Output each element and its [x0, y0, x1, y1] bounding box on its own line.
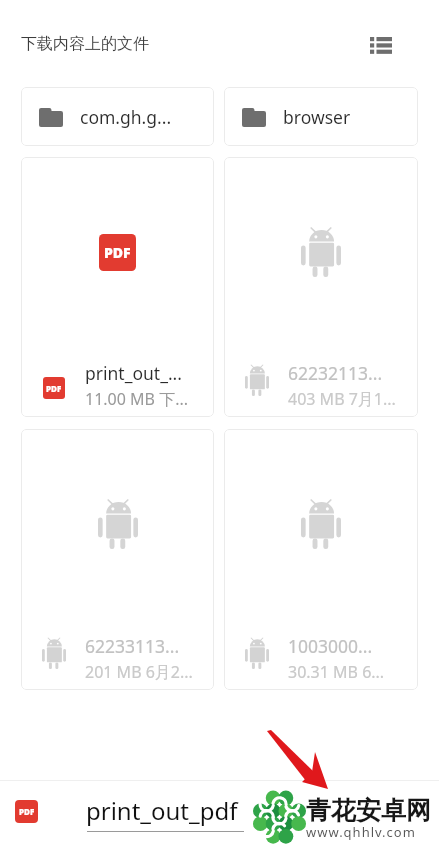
button[interactable]: List view: [365, 30, 397, 62]
button[interactable]: 62233113...: [21, 429, 214, 690]
button[interactable]: com.gh.g...: [21, 87, 214, 146]
button[interactable]: 62232113...: [224, 157, 418, 417]
staticText: 62232113...: [288, 361, 383, 385]
staticText: 30.31 MB 6...: [288, 661, 385, 683]
staticText: browser: [283, 105, 351, 129]
staticText: 青花安卓网: [306, 795, 431, 826]
staticText: 1003000...: [288, 634, 373, 658]
staticText: PDF: [46, 383, 62, 394]
staticText: PDF: [104, 243, 131, 262]
button[interactable]: 1003000...: [224, 429, 418, 690]
staticText: 62233113...: [85, 634, 180, 658]
staticText: PDF: [19, 806, 35, 817]
staticText: print_out_...: [85, 361, 182, 385]
staticText: 201 MB 6月2...: [85, 661, 193, 683]
staticText: print_out_pdf: [86, 794, 238, 827]
staticText: 11.00 MB 下...: [85, 388, 188, 410]
staticText: com.gh.g...: [80, 105, 172, 129]
staticText: 下载内容上的文件: [21, 34, 149, 54]
button[interactable]: browser: [224, 87, 418, 146]
staticText: www.qhhlv.com: [306, 823, 416, 841]
staticText: 403 MB 7月1...: [288, 388, 396, 410]
button[interactable]: PDF: [21, 157, 214, 417]
